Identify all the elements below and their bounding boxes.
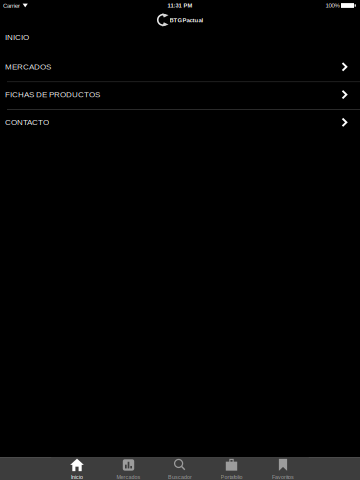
staticText: Inicio [71, 474, 83, 480]
button[interactable]: FICHAS DE PRODUCTOS [0, 82, 360, 110]
staticText: Buscador [168, 474, 192, 480]
button[interactable]: MERCADOS [0, 54, 360, 82]
button[interactable]: Mercados [103, 457, 154, 480]
button[interactable]: Favoritos [257, 457, 309, 480]
button[interactable]: Buscador [154, 457, 206, 480]
staticText: 11:31 PM [167, 2, 192, 9]
staticText: Carrier [3, 2, 20, 9]
button[interactable]: CONTACTO [0, 110, 360, 138]
button[interactable]: Inicio [51, 457, 103, 480]
button[interactable]: Portafolio [206, 457, 257, 480]
staticText: INICIO [5, 33, 29, 42]
staticText: 100% [325, 2, 339, 9]
staticText: Favoritos [272, 474, 294, 480]
staticText: CONTACTO [5, 118, 49, 127]
staticText: MERCADOS [5, 62, 51, 71]
staticText: Mercados [116, 474, 140, 480]
staticText: BTGPactual [170, 17, 204, 24]
staticText: FICHAS DE PRODUCTOS [5, 90, 100, 99]
staticText: Portafolio [220, 474, 242, 480]
